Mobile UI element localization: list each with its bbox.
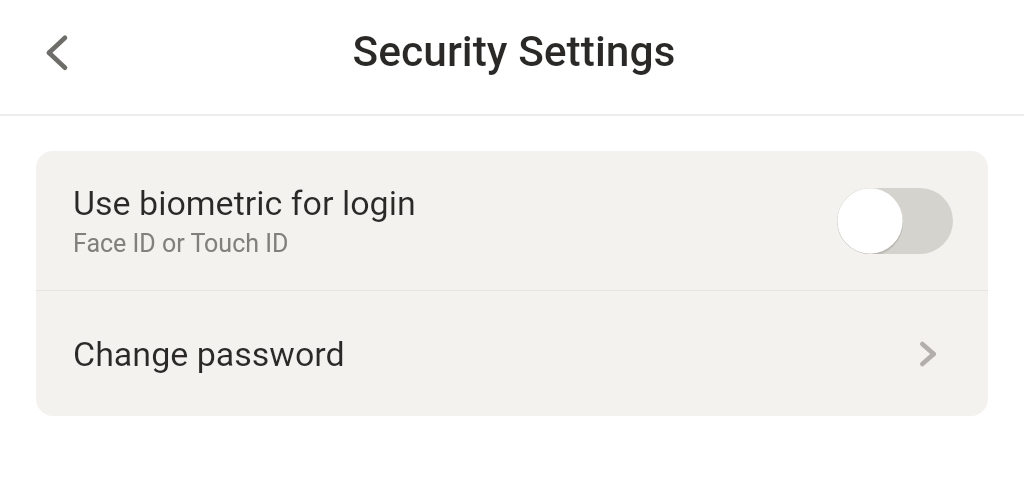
button[interactable]: Change password bbox=[36, 291, 988, 416]
staticText: Change password bbox=[73, 334, 908, 374]
staticText: Use biometric for login bbox=[73, 183, 416, 223]
staticText: Security Settings bbox=[2, 27, 1024, 77]
button[interactable]: Use biometric for login bbox=[837, 188, 953, 254]
other: Change password bbox=[908, 334, 948, 374]
staticText: Face ID or Touch ID bbox=[73, 229, 289, 258]
button[interactable]: Back bbox=[25, 22, 89, 86]
button[interactable]: Use biometric for login bbox=[36, 151, 988, 290]
